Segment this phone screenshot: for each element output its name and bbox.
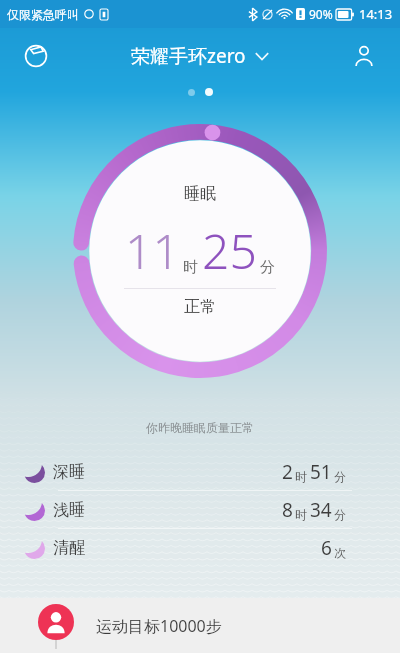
- staticText: 运动目标10000步: [96, 615, 222, 637]
- button[interactable]: Profile: [342, 34, 386, 78]
- staticText: 11: [125, 218, 180, 283]
- button[interactable]: 深睡: [0, 453, 400, 490]
- button[interactable]: Device: [14, 34, 58, 78]
- staticText: 分: [260, 258, 275, 277]
- staticText: 14:13: [359, 5, 393, 23]
- staticText: 分: [334, 469, 346, 484]
- staticText: 深睡: [53, 462, 85, 482]
- staticText: 次: [334, 545, 346, 560]
- button[interactable]: 清醒: [0, 529, 400, 566]
- staticText: 90%: [309, 6, 333, 22]
- staticText: 时: [183, 258, 198, 277]
- staticText: 8: [282, 497, 293, 523]
- staticText: 时: [295, 469, 307, 484]
- staticText: 睡眠: [184, 184, 216, 204]
- staticText: 34: [310, 497, 332, 523]
- staticText: 时: [295, 507, 307, 522]
- button[interactable]: 浅睡: [0, 491, 400, 528]
- staticText: 荣耀手环zero: [131, 43, 246, 69]
- staticText: 浅睡: [53, 500, 85, 520]
- staticText: 分: [334, 507, 346, 522]
- staticText: 正常: [184, 297, 216, 317]
- staticText: 2: [282, 459, 293, 485]
- staticText: 25: [202, 218, 257, 283]
- staticText: 6: [321, 535, 332, 561]
- button[interactable]: 荣耀手环zero: [125, 39, 275, 73]
- staticText: 你昨晚睡眠质量正常: [0, 420, 400, 435]
- staticText: 51: [310, 459, 332, 485]
- staticText: 清醒: [53, 538, 85, 558]
- button[interactable]: 运动目标10000步: [0, 598, 400, 653]
- staticText: 仅限紧急呼叫: [7, 7, 79, 22]
